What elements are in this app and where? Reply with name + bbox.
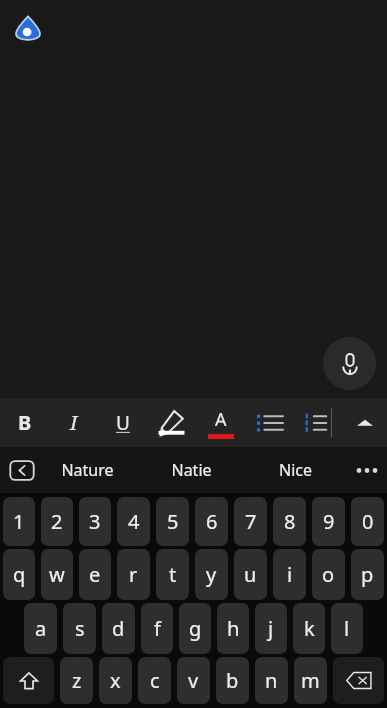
button[interactable]: c: [138, 657, 171, 704]
staticText: e: [89, 561, 101, 588]
button[interactable]: z: [60, 657, 93, 704]
staticText: 7: [245, 508, 257, 535]
button[interactable]: Text colour: [196, 398, 245, 447]
staticText: v: [188, 667, 199, 694]
button[interactable]: b: [216, 657, 249, 704]
staticText: A: [215, 407, 227, 432]
button[interactable]: 6: [195, 497, 228, 546]
staticText: 8: [284, 508, 296, 535]
staticText: p: [361, 561, 374, 588]
button[interactable]: Nice: [243, 447, 347, 493]
staticText: d: [112, 615, 125, 642]
staticText: j: [268, 615, 274, 642]
button[interactable]: Underline: [98, 398, 147, 447]
button[interactable]: j: [255, 603, 287, 654]
button[interactable]: Bold: [0, 398, 49, 447]
staticText: Nice: [279, 459, 312, 481]
button[interactable]: Ink drop: [13, 14, 43, 44]
staticText: q: [13, 561, 26, 588]
staticText: I: [70, 409, 78, 436]
button[interactable]: f: [141, 603, 173, 654]
button[interactable]: Nature: [35, 447, 139, 493]
staticText: f: [154, 615, 161, 642]
staticText: i: [287, 561, 293, 588]
button[interactable]: Voice input: [323, 337, 376, 390]
button[interactable]: u: [234, 549, 267, 600]
button[interactable]: d: [102, 603, 135, 654]
button[interactable]: a: [24, 603, 57, 654]
staticText: 6: [206, 508, 218, 535]
button[interactable]: k: [293, 603, 325, 654]
button[interactable]: 5: [156, 497, 189, 546]
button[interactable]: More suggestions: [347, 447, 387, 493]
staticText: 3: [89, 508, 101, 535]
button[interactable]: Italic: [49, 398, 98, 447]
staticText: y: [206, 561, 217, 588]
staticText: u: [244, 561, 257, 588]
button[interactable]: x: [99, 657, 132, 704]
button[interactable]: Shift: [3, 657, 54, 704]
button[interactable]: Numbered list: [294, 398, 343, 447]
staticText: Natie: [171, 459, 212, 481]
staticText: 9: [323, 508, 335, 535]
staticText: h: [227, 615, 240, 642]
button[interactable]: 7: [234, 497, 267, 546]
button[interactable]: 0: [351, 497, 384, 546]
staticText: m: [301, 667, 320, 694]
staticText: 2: [51, 508, 63, 535]
staticText: 1: [13, 508, 25, 535]
button[interactable]: 8: [273, 497, 306, 546]
button[interactable]: Natie: [139, 447, 243, 493]
staticText: o: [322, 561, 335, 588]
button[interactable]: g: [179, 603, 211, 654]
staticText: a: [35, 615, 47, 642]
staticText: 4: [128, 508, 140, 535]
button[interactable]: 3: [79, 497, 111, 546]
staticText: n: [265, 667, 278, 694]
button[interactable]: t: [156, 549, 189, 600]
staticText: x: [110, 667, 121, 694]
staticText: k: [304, 615, 315, 642]
staticText: s: [75, 615, 85, 642]
button[interactable]: 1: [3, 497, 35, 546]
button[interactable]: n: [255, 657, 288, 704]
button[interactable]: q: [3, 549, 35, 600]
button[interactable]: Bulleted list: [245, 398, 294, 447]
button[interactable]: Previous: [9, 460, 35, 481]
button[interactable]: w: [41, 549, 73, 600]
staticText: w: [49, 561, 65, 588]
button[interactable]: s: [63, 603, 96, 654]
staticText: b: [226, 667, 239, 694]
staticText: Nature: [61, 459, 114, 481]
staticText: 0: [362, 508, 374, 535]
button[interactable]: o: [312, 549, 345, 600]
button[interactable]: m: [294, 657, 327, 704]
button[interactable]: r: [117, 549, 150, 600]
button[interactable]: Collapse toolbar: [343, 398, 387, 447]
button[interactable]: e: [79, 549, 111, 600]
button[interactable]: Highlight: [147, 398, 196, 447]
button[interactable]: l: [331, 603, 363, 654]
button[interactable]: 4: [117, 497, 150, 546]
staticText: g: [189, 615, 202, 642]
staticText: U: [116, 410, 130, 436]
button[interactable]: Backspace: [333, 657, 384, 704]
staticText: c: [150, 667, 160, 694]
button[interactable]: p: [351, 549, 384, 600]
button[interactable]: h: [217, 603, 249, 654]
staticText: 5: [167, 508, 179, 535]
staticText: z: [72, 667, 82, 694]
staticText: B: [18, 409, 32, 436]
button[interactable]: i: [273, 549, 306, 600]
button[interactable]: y: [195, 549, 228, 600]
staticText: r: [129, 561, 138, 588]
staticText: t: [169, 561, 177, 588]
button[interactable]: 9: [312, 497, 345, 546]
staticText: l: [344, 615, 350, 642]
button[interactable]: 2: [41, 497, 73, 546]
button[interactable]: v: [177, 657, 210, 704]
